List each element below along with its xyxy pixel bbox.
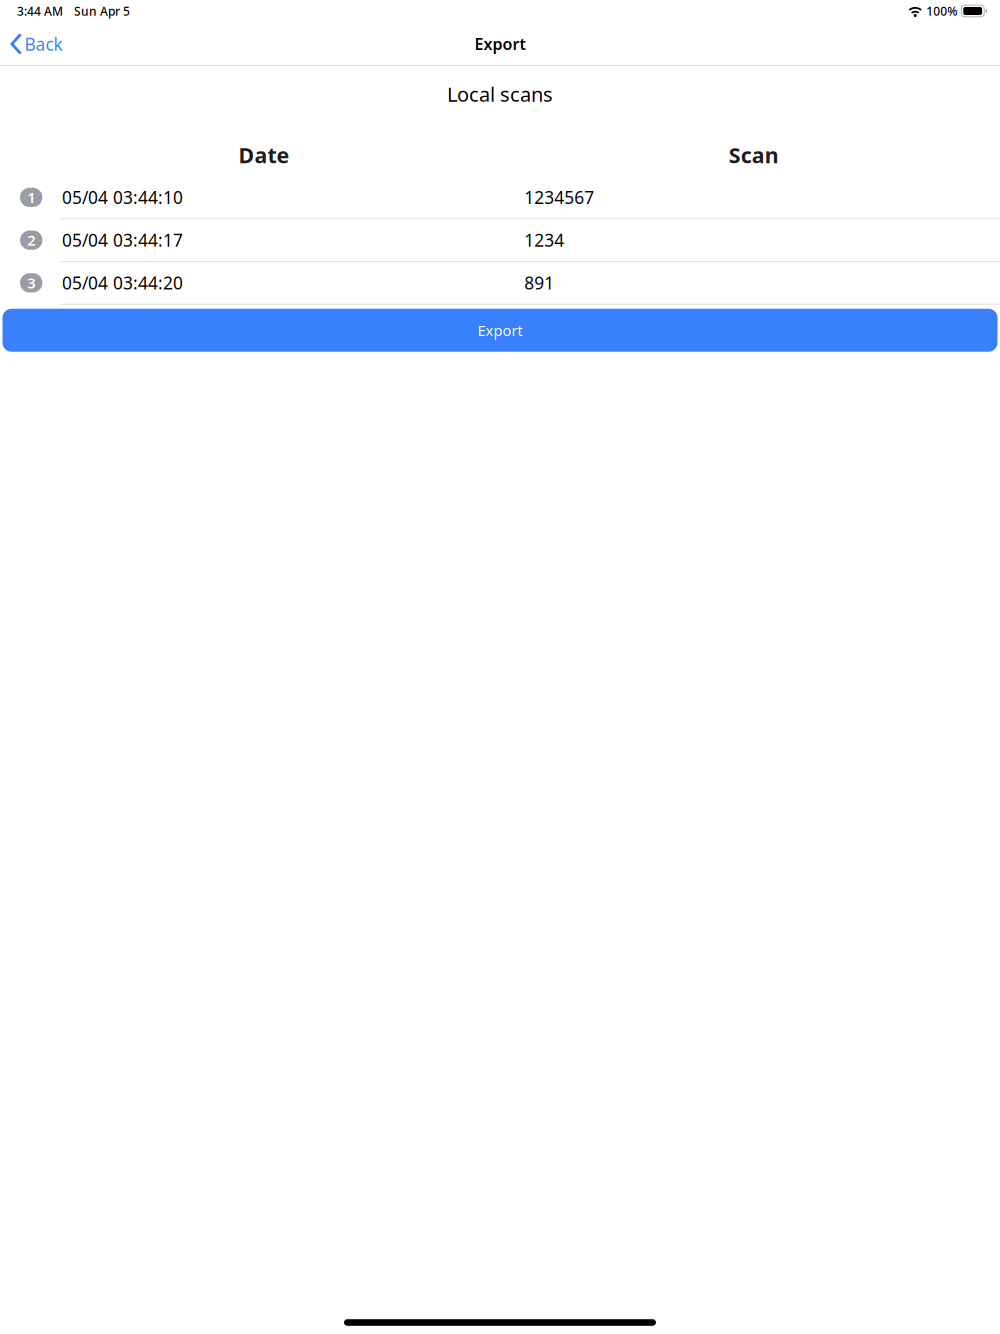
staticText: 05/04 03:44:20 (62, 271, 183, 294)
staticText: Export (474, 33, 525, 54)
staticText: 05/04 03:44:17 (62, 229, 183, 252)
staticText: Export (477, 320, 522, 340)
staticText: 05/04 03:44:10 (62, 186, 183, 209)
staticText: Date (238, 141, 289, 169)
staticText: 3 (27, 273, 35, 293)
staticText: 1234 (524, 229, 564, 252)
staticText: Local scans (447, 81, 553, 107)
staticText: Scan (729, 141, 779, 169)
staticText: 3:44 AM (17, 3, 63, 19)
staticText: 891 (524, 271, 554, 294)
staticText: 1 (27, 188, 35, 207)
staticText: Sun Apr 5 (74, 3, 130, 19)
staticText: 1234567 (524, 186, 594, 209)
button[interactable]: Export (2, 309, 997, 352)
button[interactable]: 2 (0, 219, 1000, 261)
staticText: 2 (27, 230, 35, 250)
staticText: 100% (926, 3, 957, 19)
button[interactable]: 1 (0, 176, 1000, 218)
staticText: Back (24, 32, 62, 55)
button[interactable]: Back (0, 22, 72, 66)
button[interactable]: 3 (0, 262, 1000, 304)
